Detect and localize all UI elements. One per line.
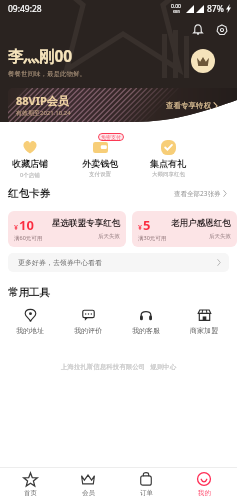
button[interactable]: 查看专享特权 [163,98,221,113]
staticText: 常用工具 [8,286,50,299]
button[interactable]: 首页 [1,471,59,497]
staticText: 我的 [198,489,211,497]
button[interactable]: 更多好券，去领券中心看看 [8,253,229,272]
staticText: KB/S [173,10,180,14]
staticText: 0.00 [171,3,181,10]
staticText: 5 [143,216,151,234]
staticText: 10 [19,216,34,234]
button[interactable]: 免密支付 [70,139,130,178]
staticText: 李灬刚00 [8,45,73,66]
staticText: 订单 [140,489,153,497]
staticText: 外卖钱包 [82,158,118,169]
staticText: 大额同享红包 [152,171,185,178]
staticText: 免密支付 [101,134,121,140]
staticText: 我的评价 [74,326,102,335]
staticText: 集点有礼 [150,158,186,169]
staticText: 后天失效 [209,233,231,240]
staticText: 87% [207,3,224,15]
button[interactable]: Settings [212,20,232,40]
staticText: 红包卡券 [8,187,50,200]
staticText: 88VIP会员 [16,93,69,108]
staticText: ¥ [138,223,143,233]
button[interactable]: 会员 [59,471,117,497]
staticText: 09:49:28 [8,3,42,15]
button[interactable]: 查看全部23张券 [172,187,229,200]
button[interactable]: 收藏店铺 [0,139,60,179]
staticText: 满30元可用 [138,234,167,242]
button[interactable]: Notifications [188,20,208,40]
staticText: ¥ [14,223,19,233]
staticText: 满60元可用 [14,234,43,242]
button[interactable]: Profile avatar [191,49,215,73]
staticText: 0个店铺 [20,171,40,179]
staticText: 我的地址 [16,326,44,335]
staticText: 收藏店铺 [12,158,48,169]
button[interactable]: ¥ [132,211,237,247]
staticText: 星选联盟专享红包 [52,218,120,229]
button[interactable]: 我的客服 [117,308,175,335]
staticText: 上海拉扎斯信息科技有限公司 规则中心 [0,362,237,371]
button[interactable]: 我的地址 [1,308,59,335]
staticText: 查看全部23张券 [174,189,221,198]
button[interactable]: 集点有礼 [139,139,197,178]
staticText: 我的客服 [132,326,160,335]
button[interactable]: 商家加盟 [175,308,233,335]
staticText: 会员 [82,489,95,497]
staticText: 查看专享特权 [166,101,211,110]
staticText: 餐餐世间味，最是此物鲜。 [8,70,86,78]
staticText: 支付设置 [89,171,111,178]
staticText: 后天失效 [98,233,120,240]
staticText: 首页 [24,489,37,497]
staticText: 商家加盟 [190,326,218,335]
button[interactable]: 我的评价 [59,308,117,335]
button[interactable]: 我的 [175,471,233,497]
button[interactable]: ¥ [8,211,126,247]
staticText: 老用户感恩红包 [171,218,231,229]
staticText: 有效期至2021.10.24 [16,109,71,117]
button[interactable]: 订单 [117,471,175,497]
staticText: 更多好券，去领券中心看看 [18,258,102,267]
